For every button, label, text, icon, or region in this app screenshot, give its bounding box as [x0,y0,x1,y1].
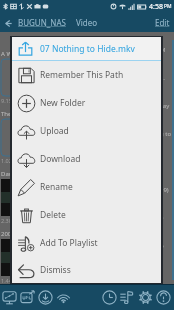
button[interactable]: Video [74,17,100,28]
staticText: 4:58 [149,2,163,12]
staticText: Edit [155,17,170,28]
button[interactable]: Delete [12,201,161,229]
button[interactable]: Edit [151,17,174,28]
staticText: Add To Playlist [40,237,98,249]
staticText: Video [76,17,98,28]
staticText: PM [164,3,172,10]
button[interactable]: Help [155,289,172,306]
staticText: A Walk Among The [1,50,54,58]
button[interactable]: History [101,289,118,306]
button[interactable]: Dismiss [12,257,161,283]
staticText: The Equalizer [1,110,39,118]
button[interactable]: BUGUN_NAS [16,17,68,28]
staticText: Dawn of The [1,170,37,178]
staticText: v [160,158,164,166]
staticText: say [160,102,170,110]
staticText: 1.02 GB [1,157,21,164]
button[interactable]: Remember This Path [12,61,161,89]
staticText: E. [160,74,165,82]
button[interactable]: Back [0,15,16,31]
staticText: 1.44 GB [1,277,21,284]
staticText: Delete [40,209,66,221]
staticText: BUGUN_NAS [18,17,66,28]
staticText: Upload [40,125,69,137]
button[interactable]: Downloads [37,289,54,306]
button[interactable]: Open URL [19,289,36,306]
button[interactable]: Screen mirroring [1,289,18,306]
staticText: g to [160,130,172,138]
staticText: 07 Nothing to Hide.mkv [40,43,135,55]
staticText: Dismiss [40,264,71,276]
button[interactable]: Network [55,289,72,306]
staticText: 2.30 GB [1,217,21,224]
button[interactable]: Settings [137,289,154,306]
button[interactable]: 07 Nothing to Hide.mkv [12,37,161,60]
button[interactable]: Add To Playlist [12,229,161,257]
staticText: Rename [40,181,73,193]
staticText: New Folder [40,97,86,109]
staticText: 0 [160,214,164,222]
button[interactable]: Rename [12,173,161,201]
button[interactable]: New Folder [12,89,161,117]
staticText: b [160,242,164,250]
button[interactable]: Playlist [119,289,136,306]
staticText: Download [40,153,81,165]
staticText: 2001 A Space [1,230,39,238]
staticText: 9.15 GB [1,97,21,104]
staticText: M [160,46,166,54]
staticText: Remember This Path [40,69,124,81]
button[interactable]: Download [12,145,161,173]
staticText: 99) [160,186,169,194]
button[interactable]: Upload [12,117,161,145]
